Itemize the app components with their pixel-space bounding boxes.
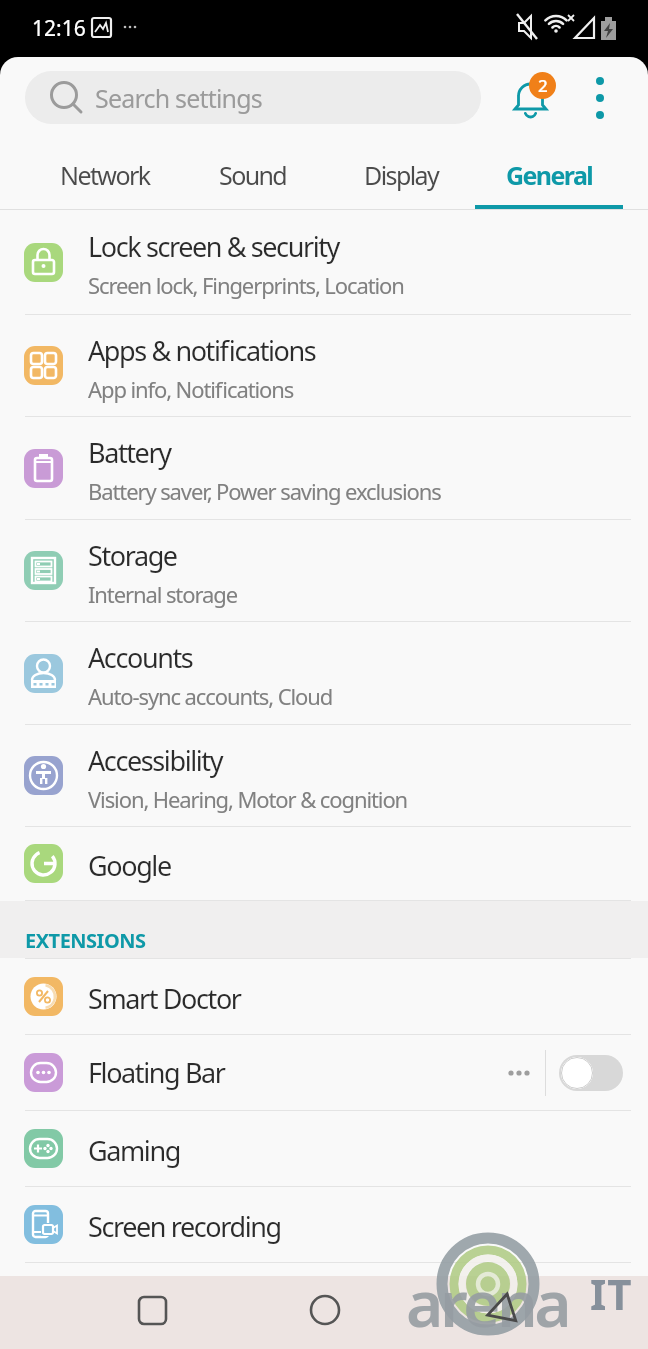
button[interactable]: Sound (179, 125, 327, 209)
staticText: Search settings (95, 81, 263, 115)
button[interactable]: General (475, 125, 623, 209)
staticText: 2 (538, 74, 548, 97)
button[interactable]: Lock screen & security (0, 210, 648, 314)
staticText: Accessibility (88, 742, 223, 779)
button[interactable] (559, 1055, 623, 1091)
staticText: App info, Notifications (88, 374, 294, 404)
staticText: Auto-sync accounts, Cloud (88, 681, 333, 711)
button[interactable] (0, 1276, 216, 1349)
staticText: Internal storage (88, 579, 237, 609)
button[interactable]: Accounts (0, 622, 648, 724)
staticText: IT (590, 1265, 633, 1322)
button[interactable]: Screen recording (0, 1187, 648, 1262)
staticText: Gaming (88, 1132, 180, 1169)
button[interactable]: Search settings (25, 71, 481, 124)
staticText: Battery saver, Power saving exclusions (88, 476, 441, 506)
button[interactable]: Gaming (0, 1111, 648, 1186)
staticText: Vision, Hearing, Motor & cognition (88, 784, 408, 814)
staticText: Storage (88, 537, 177, 574)
staticText: Screen recording (88, 1208, 281, 1245)
button[interactable]: Apps & notifications (0, 315, 648, 416)
button[interactable]: Display (327, 125, 475, 209)
button[interactable] (216, 1276, 432, 1349)
button[interactable]: Battery (0, 417, 648, 519)
staticText: Google (88, 847, 171, 884)
button[interactable]: Smart Doctor (0, 959, 648, 1034)
button[interactable] (432, 1276, 648, 1349)
button[interactable]: Floating Bar (0, 1035, 648, 1110)
staticText: Lock screen & security (88, 228, 339, 265)
staticText: 12:16 (32, 14, 86, 43)
staticText: Smart Doctor (88, 980, 241, 1017)
button[interactable]: 2 (505, 72, 560, 125)
button[interactable]: Google (0, 827, 648, 900)
staticText: Apps & notifications (88, 332, 316, 369)
staticText: General (506, 158, 593, 192)
staticText: Screen lock, Fingerprints, Location (88, 270, 404, 300)
staticText: Display (364, 158, 439, 192)
button[interactable] (580, 57, 620, 125)
button[interactable]: Network (30, 125, 179, 209)
staticText: Sound (219, 158, 287, 192)
button[interactable]: Accessibility (0, 725, 648, 826)
staticText: EXTENSIONS (25, 927, 146, 954)
staticText: Floating Bar (88, 1054, 225, 1091)
staticText: Battery (88, 434, 171, 471)
staticText: Network (60, 158, 150, 192)
staticText: arena (406, 1259, 569, 1346)
staticText: Accounts (88, 639, 193, 676)
button[interactable]: Storage (0, 520, 648, 621)
